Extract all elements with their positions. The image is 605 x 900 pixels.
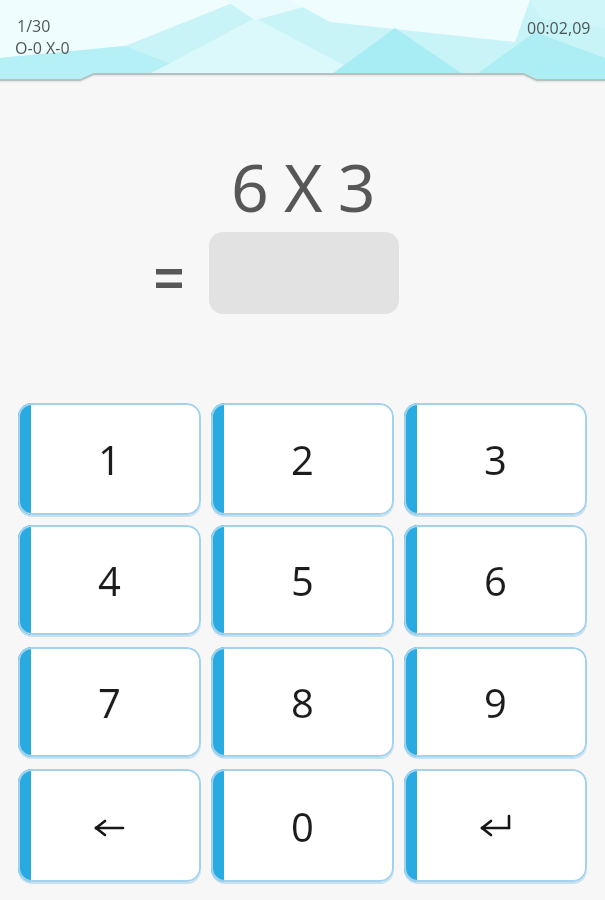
staticText: 5 [291,553,314,607]
button[interactable] [18,769,201,882]
staticText: 7 [98,675,121,729]
staticText: O-0 X-0 [15,37,70,59]
staticText: 00:02,09 [527,17,591,39]
button[interactable]: 6 [404,525,587,635]
staticText: 4 [98,553,121,607]
staticText: 6 [484,553,507,607]
staticText: 1 [98,432,121,486]
button[interactable]: 3 [404,403,587,515]
staticText: 9 [484,675,507,729]
staticText: 2 [291,432,314,486]
button[interactable]: 5 [211,525,394,635]
button[interactable]: 9 [404,647,587,757]
button[interactable]: 2 [211,403,394,515]
staticText: 8 [291,675,314,729]
staticText: 1/30 [17,15,51,37]
staticText: 3 [484,432,507,486]
button[interactable]: 1 [18,403,201,515]
button[interactable]: 0 [211,769,394,882]
button[interactable] [404,769,587,882]
button[interactable]: 7 [18,647,201,757]
staticText: 0 [291,799,314,853]
button[interactable]: 8 [211,647,394,757]
staticText: 6 X 3 [231,141,375,231]
button[interactable]: 4 [18,525,201,635]
